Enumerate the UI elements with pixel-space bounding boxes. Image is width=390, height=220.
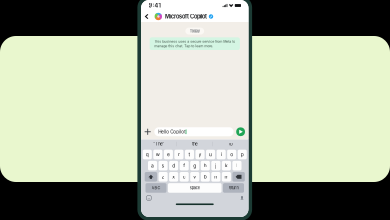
- staticText: h: [204, 163, 207, 169]
- staticText: return: [228, 186, 238, 190]
- staticText: 9:41: [148, 2, 160, 9]
- staticText: k: [225, 163, 228, 169]
- button[interactable]: v: [190, 172, 199, 182]
- button[interactable]: s: [159, 161, 168, 170]
- staticText: This business uses a secure service from…: [154, 39, 235, 48]
- button[interactable]: g: [190, 161, 199, 170]
- button[interactable]: z: [158, 172, 168, 182]
- staticText: e: [167, 151, 170, 157]
- button[interactable]: space: [168, 183, 221, 193]
- staticText: ABC: [151, 186, 160, 190]
- staticText: x: [172, 174, 175, 180]
- button[interactable]: u: [206, 150, 215, 159]
- staticText: w: [156, 151, 160, 157]
- staticText: j: [215, 163, 216, 169]
- button[interactable]: to: [213, 139, 248, 148]
- staticText: the: [192, 141, 197, 146]
- staticText: p: [241, 151, 244, 157]
- button[interactable]: p: [238, 150, 247, 159]
- staticText: r: [178, 151, 180, 157]
- button[interactable]: Hello Copilot: [154, 127, 234, 136]
- staticText: Today: [190, 29, 200, 33]
- button[interactable]: Send: [236, 127, 245, 136]
- button[interactable]: "The": [141, 139, 177, 148]
- staticText: l: [236, 163, 237, 169]
- staticText: "The": [153, 141, 164, 146]
- staticText: u: [209, 151, 212, 157]
- button[interactable]: l: [232, 161, 241, 170]
- button[interactable]: This business uses a secure service from…: [150, 37, 240, 50]
- staticText: q: [146, 151, 149, 157]
- button[interactable]: m: [222, 172, 231, 182]
- button[interactable]: the: [177, 139, 212, 148]
- staticText: y: [198, 151, 201, 157]
- staticText: v: [193, 174, 196, 180]
- button[interactable]: Shift: [145, 172, 157, 182]
- button[interactable]: Microsoft Copilot, verified business: [141, 11, 248, 22]
- button[interactable]: Backspace: [232, 172, 245, 182]
- button[interactable]: a: [148, 161, 157, 170]
- button[interactable]: i: [217, 150, 226, 159]
- staticText: m: [224, 174, 228, 180]
- staticText: g: [193, 163, 196, 169]
- button[interactable]: e: [164, 150, 173, 159]
- button[interactable]: return: [223, 183, 244, 193]
- button[interactable]: Emoji: [146, 195, 152, 201]
- staticText: to: [229, 141, 232, 146]
- button[interactable]: q: [143, 150, 152, 159]
- staticText: o: [230, 151, 233, 157]
- button[interactable]: ABC: [145, 183, 166, 193]
- button[interactable]: w: [153, 150, 162, 159]
- button[interactable]: f: [180, 161, 189, 170]
- button[interactable]: c: [180, 172, 189, 182]
- staticText: z: [162, 174, 165, 180]
- staticText: d: [172, 163, 175, 169]
- button[interactable]: b: [201, 172, 210, 182]
- button[interactable]: o: [227, 150, 236, 159]
- button[interactable]: x: [169, 172, 178, 182]
- button[interactable]: t: [185, 150, 194, 159]
- staticText: t: [188, 151, 190, 157]
- button[interactable]: Dictate: [240, 195, 243, 200]
- button[interactable]: n: [211, 172, 220, 182]
- staticText: f: [183, 163, 185, 169]
- staticText: space: [190, 186, 200, 190]
- button[interactable]: k: [222, 161, 231, 170]
- staticText: a: [151, 163, 154, 169]
- button[interactable]: y: [195, 150, 205, 159]
- staticText: Microsoft Copilot: [165, 13, 207, 20]
- button[interactable]: r: [174, 150, 183, 159]
- staticText: Hello Copilot: [158, 129, 185, 134]
- staticText: c: [183, 174, 186, 180]
- staticText: s: [162, 163, 165, 169]
- button[interactable]: j: [211, 161, 220, 170]
- staticText: b: [204, 174, 207, 180]
- staticText: n: [214, 174, 217, 180]
- button[interactable]: d: [169, 161, 178, 170]
- staticText: i: [221, 151, 222, 157]
- button[interactable]: Attach: [144, 129, 151, 135]
- button[interactable]: h: [201, 161, 210, 170]
